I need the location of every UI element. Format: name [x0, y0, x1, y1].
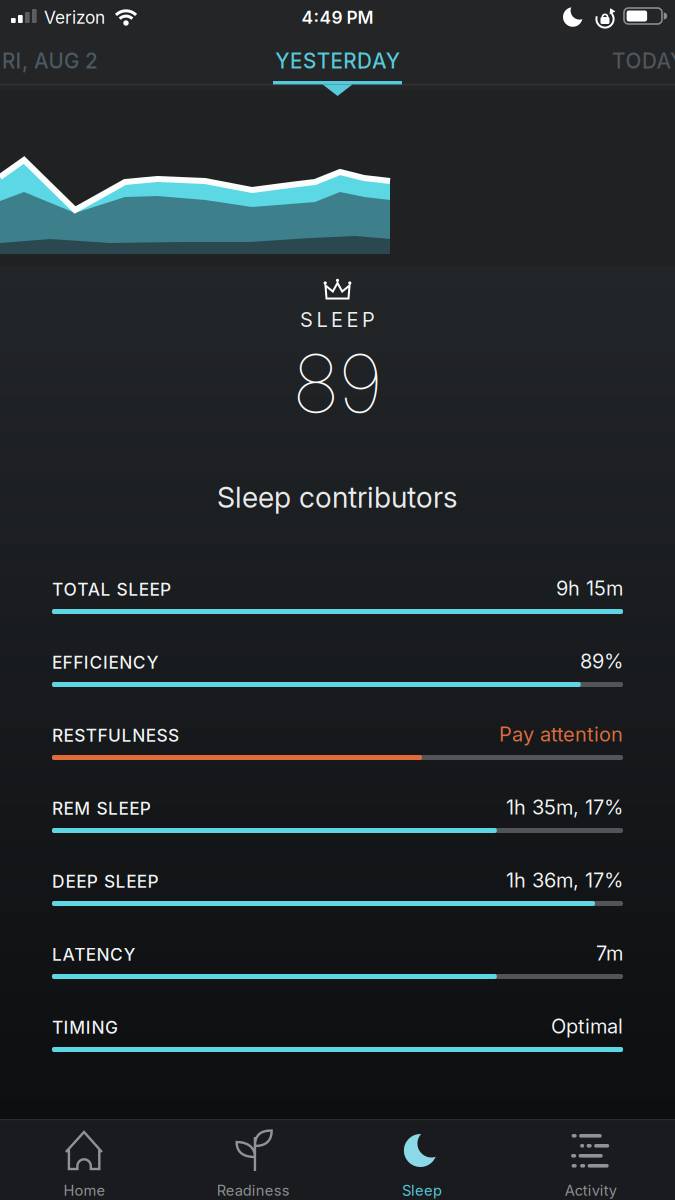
staticText: TOTAL SLEEP — [52, 579, 171, 600]
staticText: RI, AUG 2 — [2, 48, 98, 73]
staticText: 1h 35m, 17% — [506, 795, 623, 819]
staticText: RESTFULNESS — [52, 725, 179, 746]
button[interactable]: RESTFULNESS — [52, 725, 623, 775]
staticText: 1h 36m, 17% — [506, 868, 623, 892]
staticText: EFFICIENCY — [52, 652, 158, 673]
staticText: 89% — [580, 649, 623, 673]
staticText: DEEP SLEEP — [52, 871, 158, 892]
staticText: 89 — [292, 335, 383, 432]
button[interactable]: TIMING — [52, 1017, 623, 1067]
button[interactable]: RI, AUG 2 — [2, 48, 98, 73]
staticText: LATENCY — [52, 944, 136, 965]
button[interactable]: DEEP SLEEP — [52, 871, 623, 921]
staticText: 7m — [596, 941, 623, 965]
staticText: 4:49 PM — [301, 7, 373, 28]
button[interactable]: Readiness — [169, 1120, 338, 1200]
button[interactable]: EFFICIENCY — [52, 652, 623, 702]
staticText: Sleep — [402, 1182, 442, 1199]
staticText: Pay attention — [499, 722, 623, 746]
staticText: YESTERDAY — [275, 48, 400, 73]
staticText: Home — [63, 1182, 105, 1199]
button[interactable]: Home — [0, 1120, 169, 1200]
button[interactable]: TODAY — [612, 48, 675, 73]
button[interactable]: YESTERDAY — [237, 48, 437, 98]
button[interactable]: LATENCY — [52, 944, 623, 994]
button[interactable]: Activity — [506, 1120, 675, 1200]
staticText: Optimal — [551, 1014, 623, 1038]
button[interactable]: REM SLEEP — [52, 798, 623, 848]
staticText: TIMING — [52, 1017, 118, 1038]
staticText: 9h 15m — [556, 576, 623, 600]
staticText: REM SLEEP — [52, 798, 151, 819]
staticText: Readiness — [217, 1182, 290, 1199]
button[interactable]: TOTAL SLEEP — [52, 579, 623, 629]
staticText: TODAY — [612, 48, 675, 73]
staticText: SLEEP — [300, 307, 375, 332]
staticText: Activity — [565, 1182, 617, 1199]
staticText: Verizon — [44, 7, 105, 28]
button[interactable]: Sleep — [337, 1120, 506, 1200]
staticText: Sleep contributors — [217, 480, 458, 515]
